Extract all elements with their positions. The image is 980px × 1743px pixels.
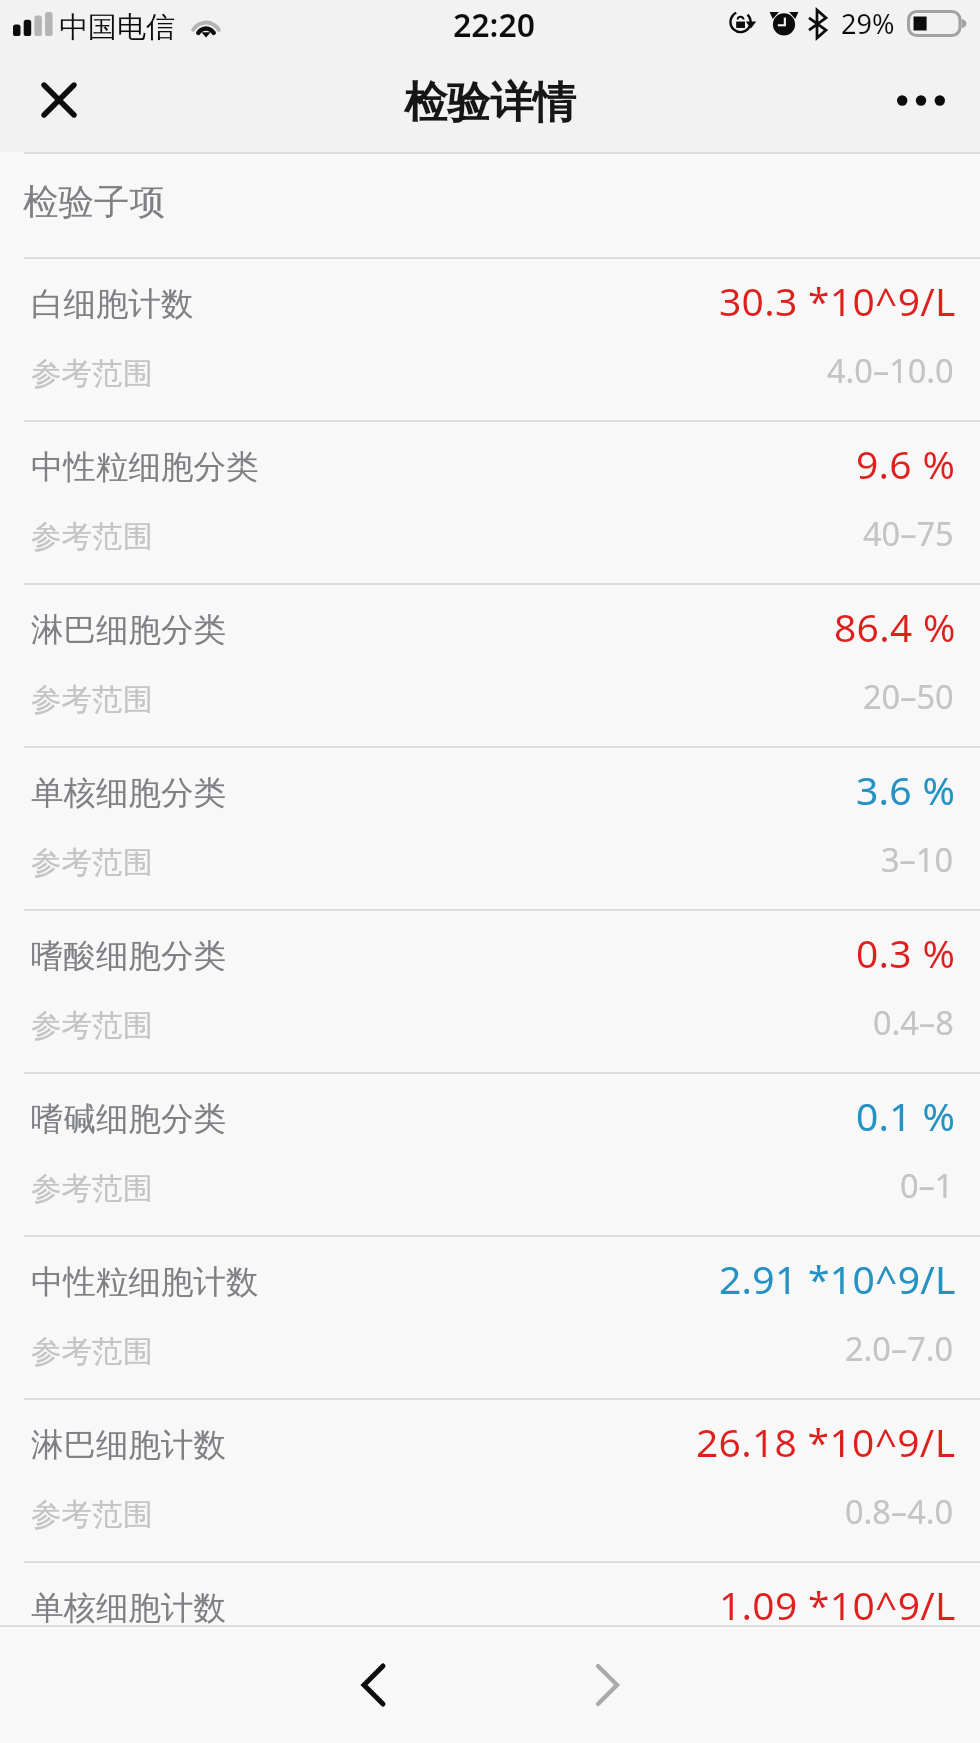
staticText: 86.4 %	[834, 600, 956, 653]
staticText: 参考范围	[31, 681, 153, 719]
staticText: 单核细胞计数	[31, 1588, 226, 1629]
staticText: 26.18 *10^9/L	[696, 1415, 956, 1468]
button[interactable]: 嗜碱细胞分类	[0, 1074, 980, 1235]
staticText: 3.6 %	[856, 763, 956, 816]
staticText: 淋巴细胞计数	[31, 1425, 226, 1466]
button[interactable]: 白细胞计数	[0, 259, 980, 420]
staticText: 中性粒细胞计数	[31, 1262, 259, 1303]
button[interactable]: 淋巴细胞分类	[0, 585, 980, 746]
staticText: 4.0–10.0	[827, 348, 954, 392]
staticText: 0.8–4.0	[845, 1489, 954, 1533]
button[interactable]: 单核细胞计数	[0, 1563, 980, 1724]
staticText: 淋巴细胞分类	[31, 610, 226, 651]
button[interactable]: 中性粒细胞分类	[0, 422, 980, 583]
staticText: 参考范围	[31, 1007, 153, 1045]
staticText: 嗜碱细胞分类	[31, 1099, 226, 1140]
staticText: 2.0–7.0	[845, 1326, 954, 1370]
button[interactable]: 单核细胞分类	[0, 748, 980, 909]
staticText: 白细胞计数	[31, 284, 194, 325]
button[interactable]: More options	[882, 61, 960, 139]
staticText: 参考范围	[31, 1333, 153, 1371]
staticText: 参考范围	[31, 844, 153, 882]
staticText: 29%	[841, 5, 895, 42]
staticText: 检验详情	[404, 76, 576, 130]
staticText: 中国电信	[59, 9, 175, 46]
staticText: 嗜酸细胞分类	[31, 936, 226, 977]
staticText: 0.1 %	[856, 1089, 956, 1142]
staticText: 参考范围	[31, 355, 153, 393]
staticText: 0.4–8	[873, 1000, 954, 1044]
button[interactable]: 嗜酸细胞分类	[0, 911, 980, 1072]
staticText: 22:20	[453, 3, 536, 47]
staticText: 3–10	[881, 837, 954, 881]
button[interactable]: Forward	[565, 1643, 649, 1727]
staticText: 0–1	[900, 1163, 954, 1207]
button[interactable]: Back	[331, 1643, 415, 1727]
staticText: 参考范围	[31, 1496, 153, 1534]
staticText: 20–50	[863, 674, 954, 718]
staticText: 2.91 *10^9/L	[719, 1252, 956, 1305]
staticText: 参考范围	[31, 518, 153, 556]
staticText: 9.6 %	[856, 437, 956, 490]
button[interactable]: 中性粒细胞计数	[0, 1237, 980, 1398]
staticText: 单核细胞分类	[31, 773, 226, 814]
staticText: 检验子项	[23, 180, 165, 225]
staticText: 40–75	[863, 511, 954, 555]
button[interactable]: 淋巴细胞计数	[0, 1400, 980, 1561]
staticText: 30.3 *10^9/L	[719, 274, 956, 327]
staticText: 0.3 %	[856, 926, 956, 979]
staticText: 中性粒细胞分类	[31, 447, 259, 488]
staticText: 1.09 *10^9/L	[719, 1578, 956, 1631]
staticText: 参考范围	[31, 1170, 153, 1208]
button[interactable]: Close	[20, 61, 98, 139]
